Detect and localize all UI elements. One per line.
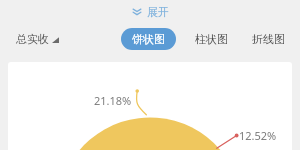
button[interactable]: 总实收 [14, 29, 61, 49]
staticText: 总实收 [16, 32, 49, 46]
staticText: 展开 [147, 5, 169, 19]
staticText: 折线图 [252, 32, 285, 46]
button[interactable]: 柱状图 [194, 28, 229, 50]
staticText: 饼状图 [132, 32, 165, 46]
button[interactable]: 折线图 [251, 28, 286, 50]
button[interactable]: 21.18% [8, 62, 292, 150]
staticText: 12.52% [239, 128, 277, 143]
button[interactable]: 展开 [125, 3, 175, 21]
staticText: 21.18% [94, 93, 132, 108]
button[interactable]: 饼状图 [121, 28, 176, 50]
staticText: 柱状图 [195, 32, 228, 46]
